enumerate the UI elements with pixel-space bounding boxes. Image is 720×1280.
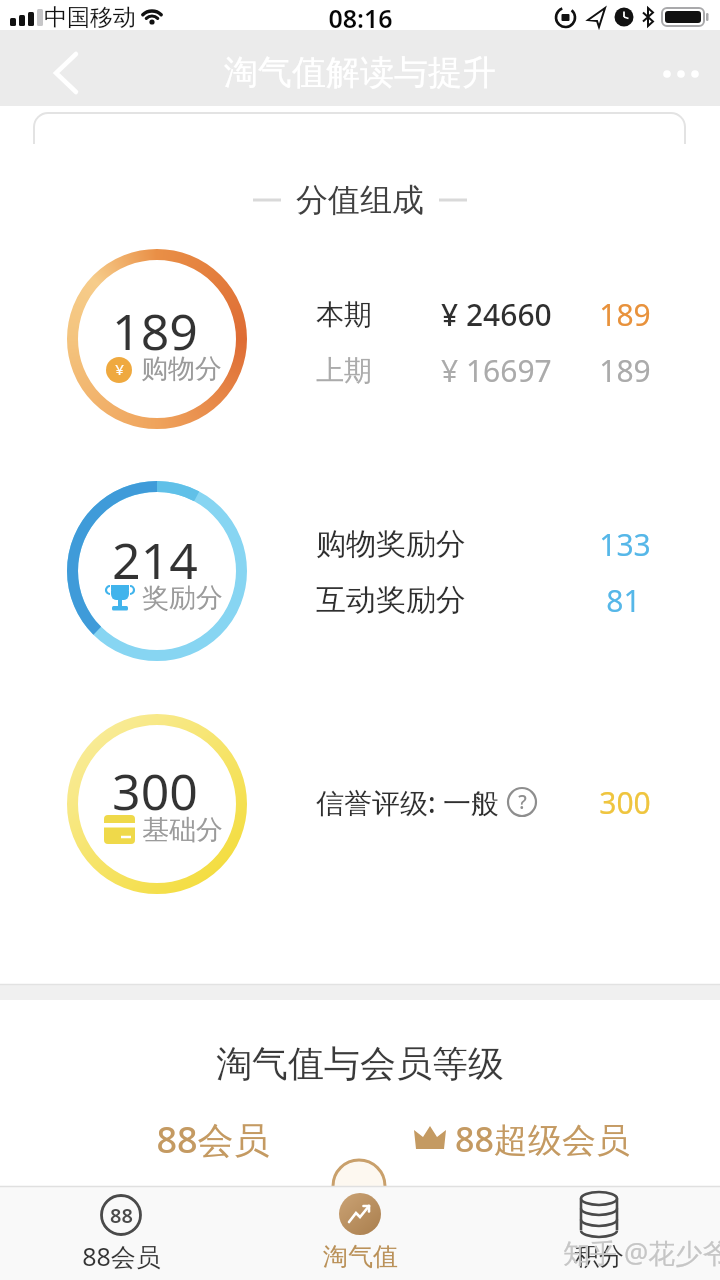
staticText: 88会员 [82, 1239, 161, 1273]
staticText: 88会员 [156, 1115, 270, 1163]
staticText: 分值组成 [296, 180, 424, 220]
button[interactable]: ? [506, 786, 538, 818]
staticText: ¥ 16697 [441, 350, 552, 391]
staticText: 189 [599, 294, 651, 334]
staticText: 189 [112, 297, 198, 357]
staticText: ¥ 24660 [441, 294, 552, 335]
staticText: 购物分 [141, 352, 222, 386]
staticText: 214 [112, 526, 198, 586]
button[interactable]: 淘气值 [280, 1188, 440, 1280]
staticText: 基础分 [142, 813, 223, 847]
staticText: 81 [606, 580, 641, 620]
staticText: 本期 [316, 297, 372, 332]
staticText: 88 [110, 1202, 133, 1229]
button[interactable]: 88 [41, 1188, 201, 1280]
staticText: 133 [599, 524, 651, 564]
button[interactable] [40, 48, 90, 98]
staticText: 300 [599, 782, 651, 822]
staticText: 奖励分 [142, 581, 223, 615]
staticText: 信誉评级: 一般 [316, 783, 499, 821]
button[interactable] [655, 58, 710, 90]
staticText: 积分 [574, 1241, 624, 1272]
staticText: 淘气值解读与提升 [224, 51, 496, 94]
staticText: 淘气值 [323, 1241, 398, 1272]
staticText: 购物奖励分 [316, 525, 466, 563]
staticText: 知乎 @花少爷 [563, 1234, 720, 1271]
staticText: 互动奖励分 [316, 581, 466, 619]
staticText: 中国移动 [44, 3, 136, 32]
staticText: ? [518, 789, 527, 815]
staticText: ¥ [115, 359, 124, 379]
staticText: 淘气值与会员等级 [216, 1041, 504, 1086]
staticText: 300 [112, 757, 198, 817]
staticText: 08:16 [328, 1, 393, 33]
staticText: 88超级会员 [455, 1116, 630, 1162]
staticText: 189 [599, 350, 651, 390]
staticText: 上期 [316, 353, 372, 388]
button[interactable]: 积分 [519, 1188, 679, 1280]
